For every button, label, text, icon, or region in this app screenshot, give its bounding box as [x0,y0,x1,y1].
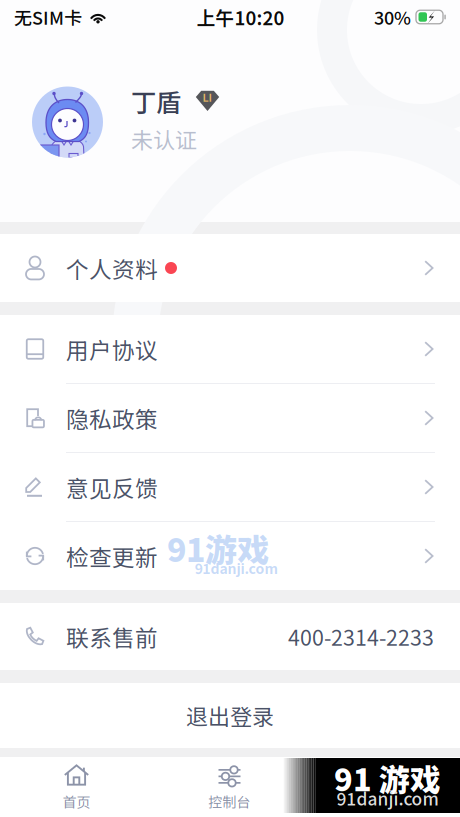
button[interactable]: 首页 [0,757,153,817]
staticText: 400-2314-2233 [288,621,434,652]
staticText: 用户协议 [66,333,158,365]
staticText: 丁盾 [131,83,181,119]
staticText: 上午10:20 [196,3,284,30]
staticText: 91游戏 [167,525,269,571]
button[interactable]: 检查更新 [0,522,460,590]
staticText: 退出登录 [186,700,274,731]
button[interactable]: 控制台 [153,757,306,817]
staticText: 控制台 [208,791,250,812]
staticText: 未认证 [131,123,197,155]
staticText: 个人资料 [66,252,158,284]
staticText: 意见反馈 [66,471,158,503]
button[interactable]: 隐私政策 [0,384,460,452]
staticText: 联系售前 [66,620,158,653]
button[interactable]: 用户协议 [0,315,460,383]
staticText: 隐私政策 [66,402,158,434]
button[interactable]: 意见反馈 [0,453,460,521]
button[interactable]: 个人资料 [0,234,460,302]
staticText: 30% [374,4,411,30]
staticText: 91danji.com [194,558,277,578]
button[interactable]: 退出登录 [0,683,460,748]
button[interactable]: 联系售前 [0,603,460,670]
staticText: 检查更新 [66,540,158,572]
staticText: LI [202,89,212,105]
staticText: 91 游戏 [334,756,441,800]
staticText: 91danji.com [336,785,438,811]
staticText: 无SIM卡 [14,4,82,30]
staticText: 首页 [62,791,90,812]
